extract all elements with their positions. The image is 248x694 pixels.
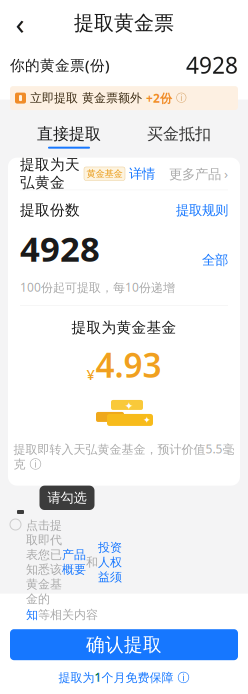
button[interactable]: 提取规则 xyxy=(176,202,228,218)
staticText: 提取规则 xyxy=(176,202,228,218)
staticText: 详情 xyxy=(129,165,155,182)
staticText: 立即提取 黄金票额外 xyxy=(30,91,142,105)
staticText: ⓘ xyxy=(176,91,187,105)
staticText: 提取为1个月免费保障 ⓘ xyxy=(58,669,189,685)
staticText: 全部 xyxy=(202,252,228,268)
staticText: 投资人权益须 xyxy=(98,540,122,584)
staticText: 请勾选 xyxy=(47,490,86,506)
staticText: 产品概要 xyxy=(62,547,86,577)
button[interactable]: 立即提取 黄金票额外 xyxy=(10,86,238,110)
staticText: 买金抵扣 xyxy=(147,124,211,144)
button[interactable]: 返回 xyxy=(0,6,40,40)
staticText: 提取黄金票 xyxy=(74,11,174,35)
staticText: 直接提取 xyxy=(37,124,101,144)
staticText: 4.93 xyxy=(95,343,161,387)
staticText: 4928 xyxy=(20,225,100,271)
staticText: 提取即转入天弘黄金基金，预计价值5.5毫克 ⓘ xyxy=(13,441,234,472)
button[interactable]: 提取为1个月免费保障 ⓘ xyxy=(58,669,189,685)
staticText: 等相关内容 xyxy=(38,607,98,622)
button[interactable]: 确认提取 xyxy=(10,629,238,660)
staticText: 提取份数 xyxy=(20,201,80,219)
staticText: 和 xyxy=(86,555,98,570)
staticText: 你的黄金票(份) xyxy=(10,55,110,75)
staticText: 更多产品 › xyxy=(169,165,228,182)
staticText: 点击提取即代表您已知悉该黄金基金的 xyxy=(26,518,62,606)
staticText: 4928 xyxy=(186,50,238,80)
staticText: 提取为天弘黄金 xyxy=(20,156,80,192)
staticText: ✦ xyxy=(143,415,151,425)
staticText: 黄金基金 xyxy=(86,168,122,179)
button[interactable]: 买金抵扣 xyxy=(124,124,234,149)
staticText: ‹ xyxy=(15,3,24,42)
button[interactable]: 直接提取 xyxy=(14,124,124,149)
button[interactable]: 提取为天弘黄金 xyxy=(8,158,240,190)
staticText: +2份 xyxy=(146,90,172,106)
staticText: 确认提取 xyxy=(86,633,162,656)
button[interactable]: 全部 xyxy=(202,252,228,271)
staticText: ✦ xyxy=(124,400,133,412)
staticText: 100份起可提取，每10份递增 xyxy=(20,279,175,295)
staticText: 知 xyxy=(26,607,38,622)
staticText: 提取为黄金基金 xyxy=(71,319,176,337)
button[interactable]: 点击提取即代表您已知悉该黄金基金的 xyxy=(0,514,248,622)
staticText: ¥ xyxy=(86,364,94,384)
